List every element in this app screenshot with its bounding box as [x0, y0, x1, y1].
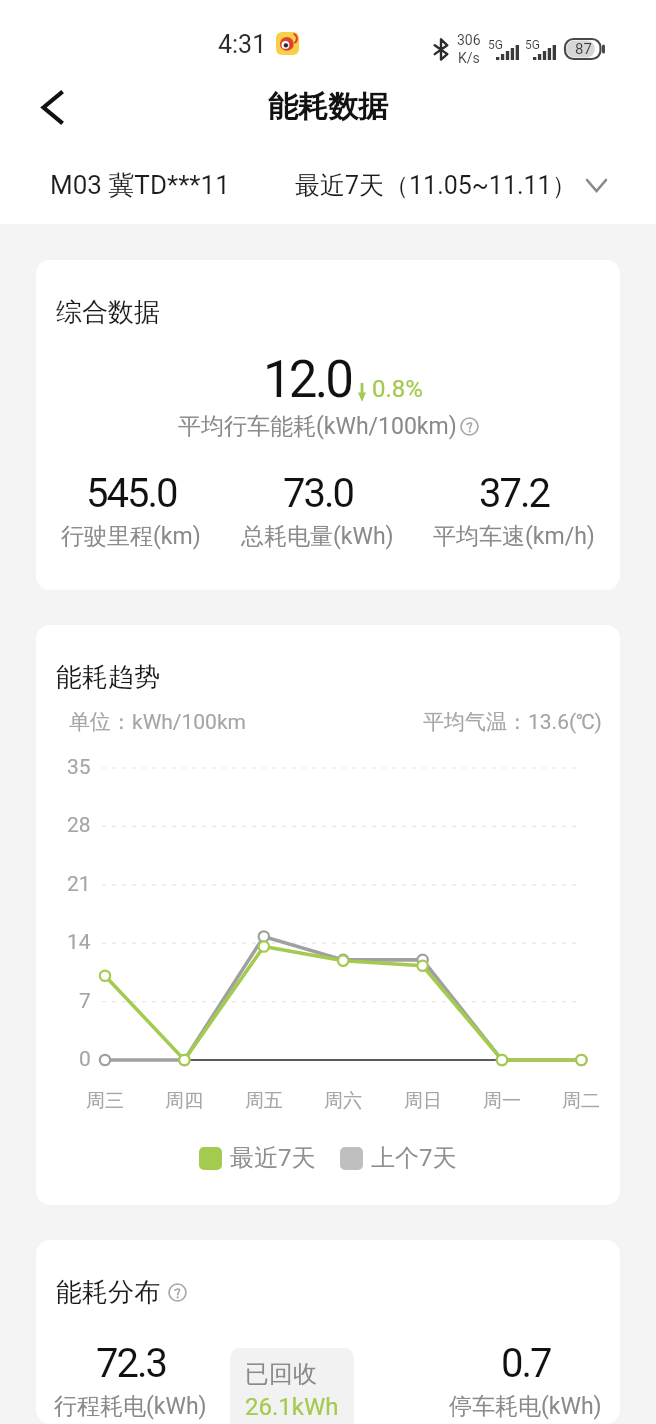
- staticText: 周六: [324, 1089, 362, 1113]
- staticText: 行程耗电(kWh): [54, 1392, 207, 1421]
- staticText: 0.8%: [372, 375, 423, 403]
- staticText: 26.1kWh: [245, 1393, 339, 1421]
- staticText: 最近7天: [230, 1143, 316, 1173]
- staticText: 单位：kWh/100km: [69, 709, 246, 735]
- staticText: 12.0: [263, 350, 352, 410]
- staticText: 35: [67, 755, 91, 780]
- button[interactable]: Back: [26, 81, 78, 133]
- staticText: 0: [79, 1047, 91, 1072]
- staticText: 平均车速(km/h): [433, 522, 595, 551]
- staticText: 周日: [404, 1089, 442, 1113]
- staticText: 5G: [525, 38, 540, 52]
- button[interactable]: 上个7天: [340, 1143, 457, 1173]
- staticText: 平均气温：13.6(℃): [423, 709, 602, 735]
- button[interactable]: 最近7天（11.05~11.11）: [295, 170, 606, 201]
- staticText: 87: [575, 40, 592, 58]
- staticText: 21: [67, 872, 91, 897]
- staticText: 0.7: [501, 1340, 551, 1387]
- staticText: 37.2: [479, 470, 549, 517]
- staticText: 545.0: [86, 470, 177, 517]
- staticText: 14: [67, 930, 91, 955]
- staticText: 周三: [86, 1089, 124, 1113]
- staticText: 已回收: [245, 1359, 317, 1389]
- staticText: 周四: [165, 1089, 203, 1113]
- button[interactable]: 最近7天: [199, 1143, 316, 1173]
- staticText: 总耗电量(kWh): [241, 522, 394, 551]
- staticText: 行驶里程(km): [61, 522, 201, 551]
- staticText: 停车耗电(kWh): [449, 1392, 602, 1421]
- staticText: M03 冀TD***11: [50, 169, 230, 202]
- staticText: 综合数据: [56, 296, 160, 329]
- staticText: 7: [79, 989, 91, 1014]
- staticText: 5G: [488, 38, 503, 52]
- staticText: 最近7天（11.05~11.11）: [295, 170, 577, 201]
- staticText: 28: [67, 813, 91, 838]
- staticText: 306: [457, 32, 481, 48]
- staticText: 73.0: [283, 470, 353, 517]
- staticText: 72.3: [96, 1340, 166, 1387]
- staticText: 能耗数据: [268, 88, 388, 126]
- staticText: 能耗分布: [56, 1276, 160, 1309]
- staticText: 能耗趋势: [56, 661, 160, 694]
- staticText: 周五: [245, 1089, 283, 1113]
- staticText: 4:31: [218, 30, 267, 59]
- staticText: 周二: [562, 1089, 600, 1113]
- staticText: 周一: [483, 1089, 521, 1113]
- staticText: 平均行车能耗(kWh/100km): [178, 412, 457, 441]
- staticText: 上个7天: [371, 1143, 457, 1173]
- staticText: K/s: [458, 50, 480, 66]
